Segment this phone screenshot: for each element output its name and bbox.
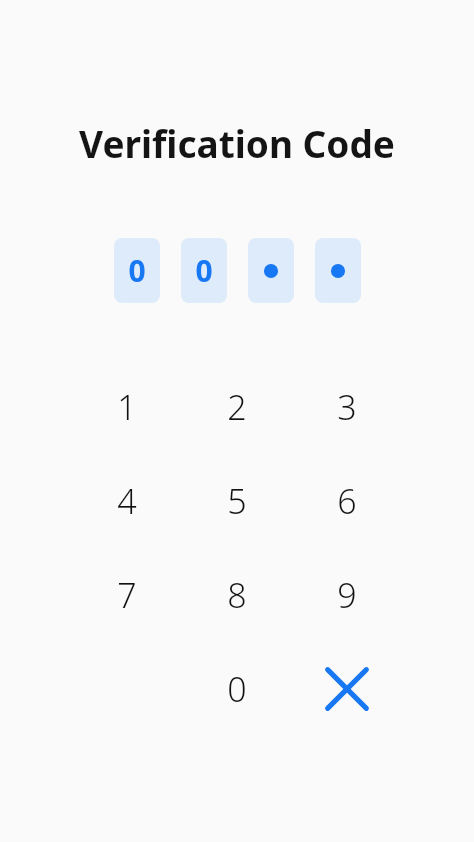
staticText: 4	[117, 478, 137, 524]
button[interactable]: 0	[114, 238, 160, 303]
button[interactable]: 8	[182, 548, 292, 642]
staticText: 0	[227, 666, 247, 712]
button[interactable]: 5	[182, 454, 292, 548]
button[interactable]: 0	[181, 238, 227, 303]
button[interactable]: 0	[182, 642, 292, 736]
staticText: Verification Code	[79, 118, 395, 168]
staticText: 9	[337, 572, 357, 618]
staticText: 8	[227, 572, 247, 618]
staticText: 3	[337, 384, 357, 430]
staticText: 0	[195, 250, 213, 291]
staticText: 7	[117, 572, 137, 618]
button[interactable]: 6	[292, 454, 402, 548]
staticText: 1	[117, 384, 137, 430]
staticText: 0	[128, 250, 146, 291]
staticText: 6	[337, 478, 357, 524]
button[interactable]: 2	[182, 360, 292, 454]
button[interactable]: 7	[72, 548, 182, 642]
button[interactable]: Delete	[292, 642, 402, 736]
staticText: 2	[227, 384, 247, 430]
button[interactable]: 4	[72, 454, 182, 548]
staticText: 5	[227, 478, 247, 524]
button[interactable]	[248, 238, 294, 303]
button[interactable]	[315, 238, 361, 303]
button[interactable]: 3	[292, 360, 402, 454]
button[interactable]: 9	[292, 548, 402, 642]
button[interactable]: 1	[72, 360, 182, 454]
